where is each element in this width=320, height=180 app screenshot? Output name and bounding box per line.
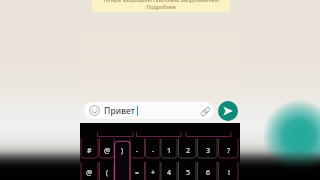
button[interactable]: 6 bbox=[198, 165, 218, 180]
staticText: @ bbox=[104, 146, 111, 156]
button[interactable]: Привет bbox=[84, 102, 214, 119]
button[interactable]: Теперь защищены сквозным шифрованием bbox=[92, 0, 230, 12]
button[interactable]: - bbox=[130, 143, 145, 159]
staticText: Привет bbox=[104, 105, 135, 117]
button[interactable]: 1 bbox=[161, 143, 177, 159]
button[interactable]: ! bbox=[219, 165, 239, 180]
staticText: 5 bbox=[186, 168, 191, 178]
staticText: Подробнее bbox=[92, 3, 230, 10]
button[interactable]: - bbox=[146, 143, 161, 159]
staticText: ? bbox=[227, 146, 231, 156]
button[interactable]: 4 bbox=[161, 165, 177, 180]
staticText: @ bbox=[86, 168, 93, 178]
button[interactable]: @ bbox=[81, 165, 98, 180]
staticText: + bbox=[151, 168, 156, 178]
staticText: ( bbox=[106, 168, 109, 178]
button[interactable]: ( bbox=[100, 165, 115, 180]
button[interactable]: ) bbox=[115, 143, 130, 159]
button[interactable]: 3 bbox=[198, 143, 218, 159]
button[interactable]: 2 bbox=[179, 143, 197, 159]
button[interactable]: + bbox=[146, 165, 161, 180]
staticText: 2 bbox=[186, 146, 191, 156]
staticText: Теперь защищены сквозным шифрованием bbox=[92, 0, 230, 3]
button[interactable]: ? bbox=[219, 143, 239, 159]
staticText: ! bbox=[228, 168, 230, 178]
button[interactable]: Attach file bbox=[199, 105, 212, 118]
staticText: - bbox=[152, 146, 155, 156]
staticText: 1 bbox=[167, 146, 172, 156]
staticText: 6 bbox=[206, 168, 211, 178]
staticText: - bbox=[136, 146, 139, 156]
staticText: # bbox=[87, 146, 92, 156]
button[interactable]: 5 bbox=[179, 165, 197, 180]
button[interactable]: Send message bbox=[218, 101, 238, 121]
staticText: 4 bbox=[167, 168, 172, 178]
button[interactable]: # bbox=[81, 143, 98, 159]
staticText: 3 bbox=[206, 146, 211, 156]
staticText: = bbox=[135, 168, 140, 178]
button[interactable]: @ bbox=[100, 143, 115, 159]
button[interactable]: = bbox=[130, 165, 145, 180]
staticText: ) bbox=[121, 146, 124, 156]
